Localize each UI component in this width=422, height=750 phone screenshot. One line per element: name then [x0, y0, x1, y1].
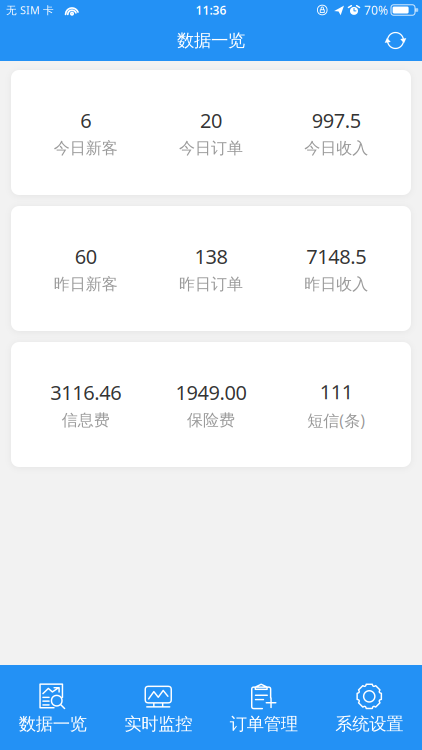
staticText: 今日订单 — [179, 138, 243, 158]
staticText: 11:36 — [195, 2, 226, 18]
staticText: 111 — [320, 378, 353, 405]
staticText: 无 SIM 卡 — [6, 3, 54, 17]
staticText: 订单管理 — [230, 713, 298, 735]
staticText: 7148.5 — [306, 243, 366, 269]
staticText: 6 — [80, 107, 91, 133]
staticText: 数据一览 — [177, 30, 245, 51]
staticText: 短信(条) — [307, 410, 365, 431]
staticText: 60 — [75, 243, 97, 269]
staticText: 信息费 — [62, 410, 110, 430]
staticText: 数据一览 — [19, 713, 87, 735]
button[interactable]: 数据一览 — [0, 662, 105, 750]
staticText: 138 — [194, 243, 227, 269]
staticText: 昨日收入 — [304, 274, 368, 294]
staticText: 1949.00 — [175, 379, 246, 405]
staticText: 997.5 — [312, 107, 361, 133]
button[interactable]: 实时监控 — [105, 662, 211, 750]
staticText: 昨日新客 — [54, 274, 118, 294]
button[interactable]: 订单管理 — [211, 662, 316, 750]
staticText: 系统设置 — [335, 713, 403, 735]
staticText: 20 — [200, 107, 222, 133]
staticText: 今日收入 — [304, 138, 368, 158]
staticText: 昨日订单 — [179, 274, 243, 294]
staticText: 今日新客 — [54, 138, 118, 158]
staticText: 70% — [364, 2, 388, 18]
staticText: 3116.46 — [50, 379, 121, 405]
staticText: 保险费 — [187, 410, 235, 430]
button[interactable]: 系统设置 — [316, 662, 422, 750]
button[interactable]: 刷新 — [372, 20, 422, 61]
staticText: 实时监控 — [124, 713, 192, 735]
